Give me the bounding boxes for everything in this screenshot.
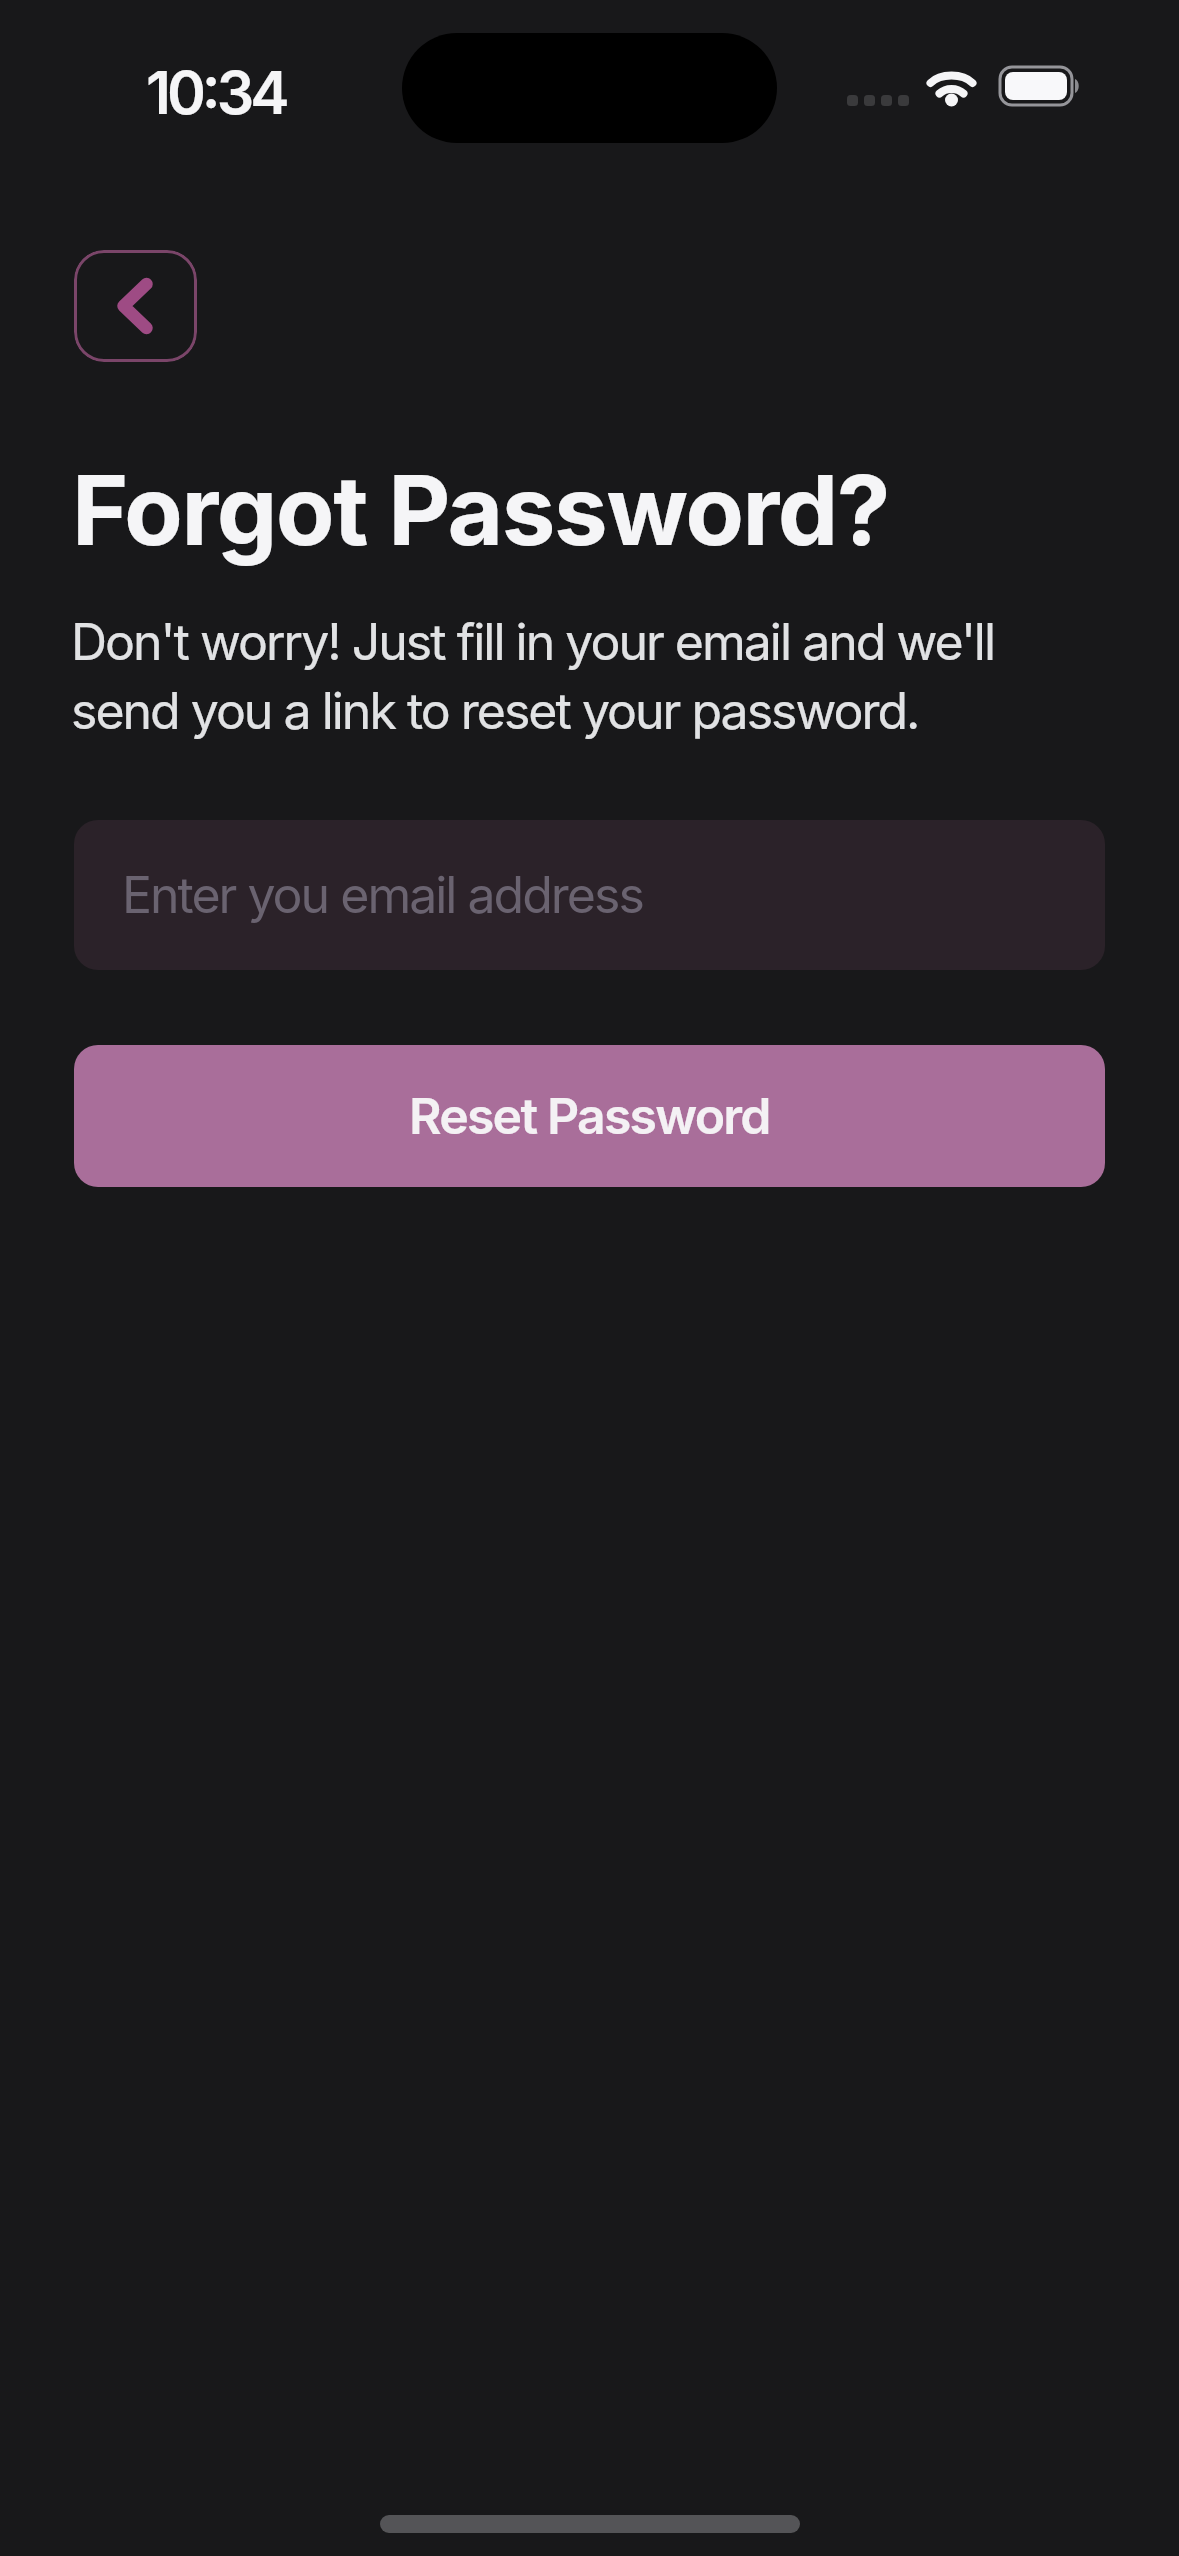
staticText: Don't worry! Just fill in your email and… [71,612,995,741]
staticText: Enter you email address [122,865,643,925]
button[interactable] [74,250,197,362]
button[interactable]: Enter you email address [74,820,1105,970]
button[interactable]: Reset Password [74,1045,1105,1187]
staticText: 10:34 [146,57,286,128]
staticText: Reset Password [409,1086,770,1146]
staticText: Forgot Password? [72,452,890,568]
